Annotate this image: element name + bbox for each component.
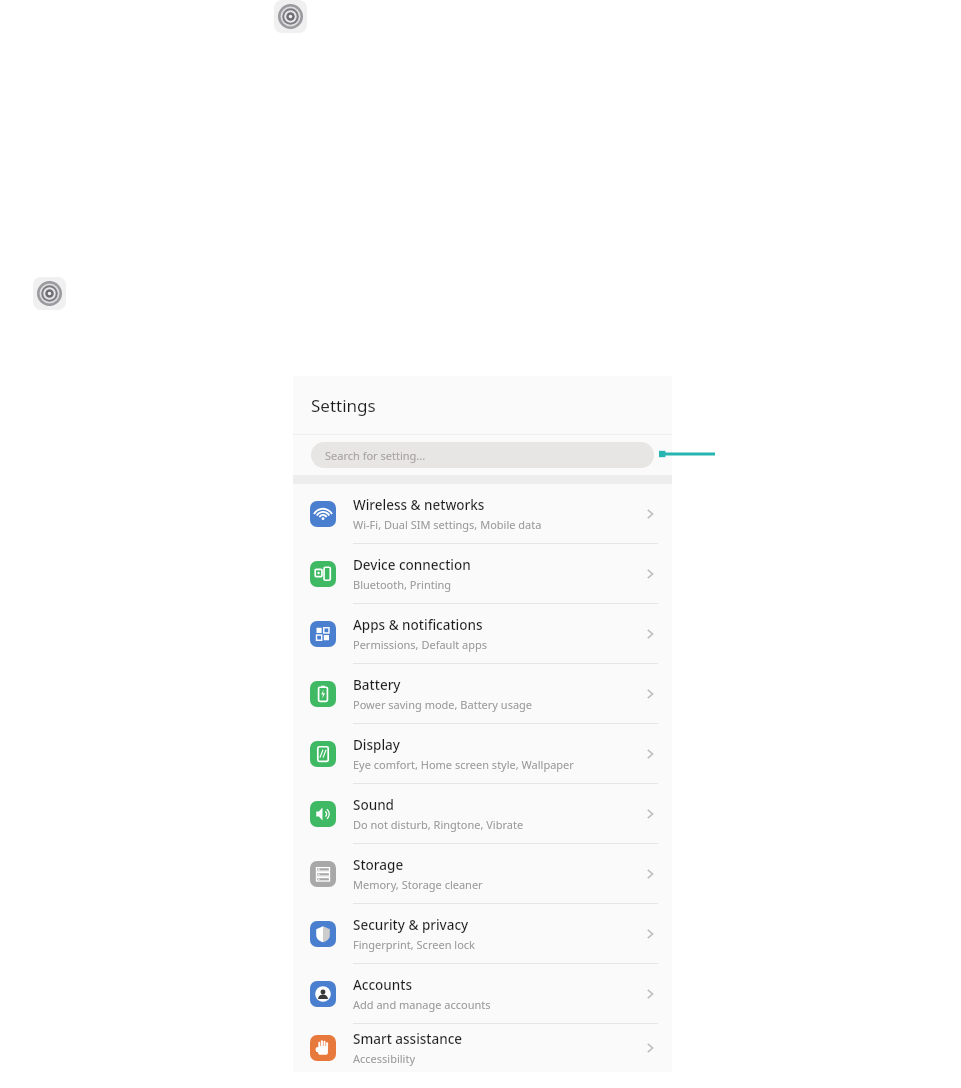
button[interactable]: Security & privacy <box>293 904 672 964</box>
button[interactable]: Settings <box>274 0 307 33</box>
staticText: Add and manage accounts <box>353 997 491 1012</box>
staticText: Search for setting... <box>325 448 426 463</box>
button[interactable]: Wireless & networks <box>293 484 672 544</box>
staticText: Smart assistance <box>353 1030 463 1048</box>
staticText: Storage <box>353 856 404 874</box>
button[interactable]: Sound <box>293 784 672 844</box>
button[interactable]: Smart assistance <box>293 1024 672 1072</box>
staticText: Memory, Storage cleaner <box>353 877 483 892</box>
staticText: Accessibility <box>353 1051 416 1066</box>
staticText: Power saving mode, Battery usage <box>353 697 533 712</box>
staticText: Accounts <box>353 976 413 994</box>
staticText: Battery <box>353 676 401 694</box>
staticText: Security & privacy <box>353 916 469 934</box>
button[interactable]: Battery <box>293 664 672 724</box>
button[interactable]: Settings <box>33 277 66 310</box>
staticText: Bluetooth, Printing <box>353 577 452 592</box>
staticText: Settings <box>311 394 376 417</box>
staticText: Sound <box>353 796 394 814</box>
staticText: Do not disturb, Ringtone, Vibrate <box>353 817 524 832</box>
staticText: Display <box>353 736 400 754</box>
staticText: Device connection <box>353 556 471 574</box>
staticText: Eye comfort, Home screen style, Wallpape… <box>353 757 574 772</box>
button[interactable]: Device connection <box>293 544 672 604</box>
staticText: Fingerprint, Screen lock <box>353 937 475 952</box>
staticText: Wi-Fi, Dual SIM settings, Mobile data <box>353 517 542 532</box>
staticText: Permissions, Default apps <box>353 637 488 652</box>
button[interactable]: Display <box>293 724 672 784</box>
button[interactable]: Storage <box>293 844 672 904</box>
staticText: Wireless & networks <box>353 496 485 514</box>
button[interactable]: Search for setting... <box>311 442 654 468</box>
button[interactable]: Apps & notifications <box>293 604 672 664</box>
button[interactable]: Accounts <box>293 964 672 1024</box>
staticText: Apps & notifications <box>353 616 483 634</box>
